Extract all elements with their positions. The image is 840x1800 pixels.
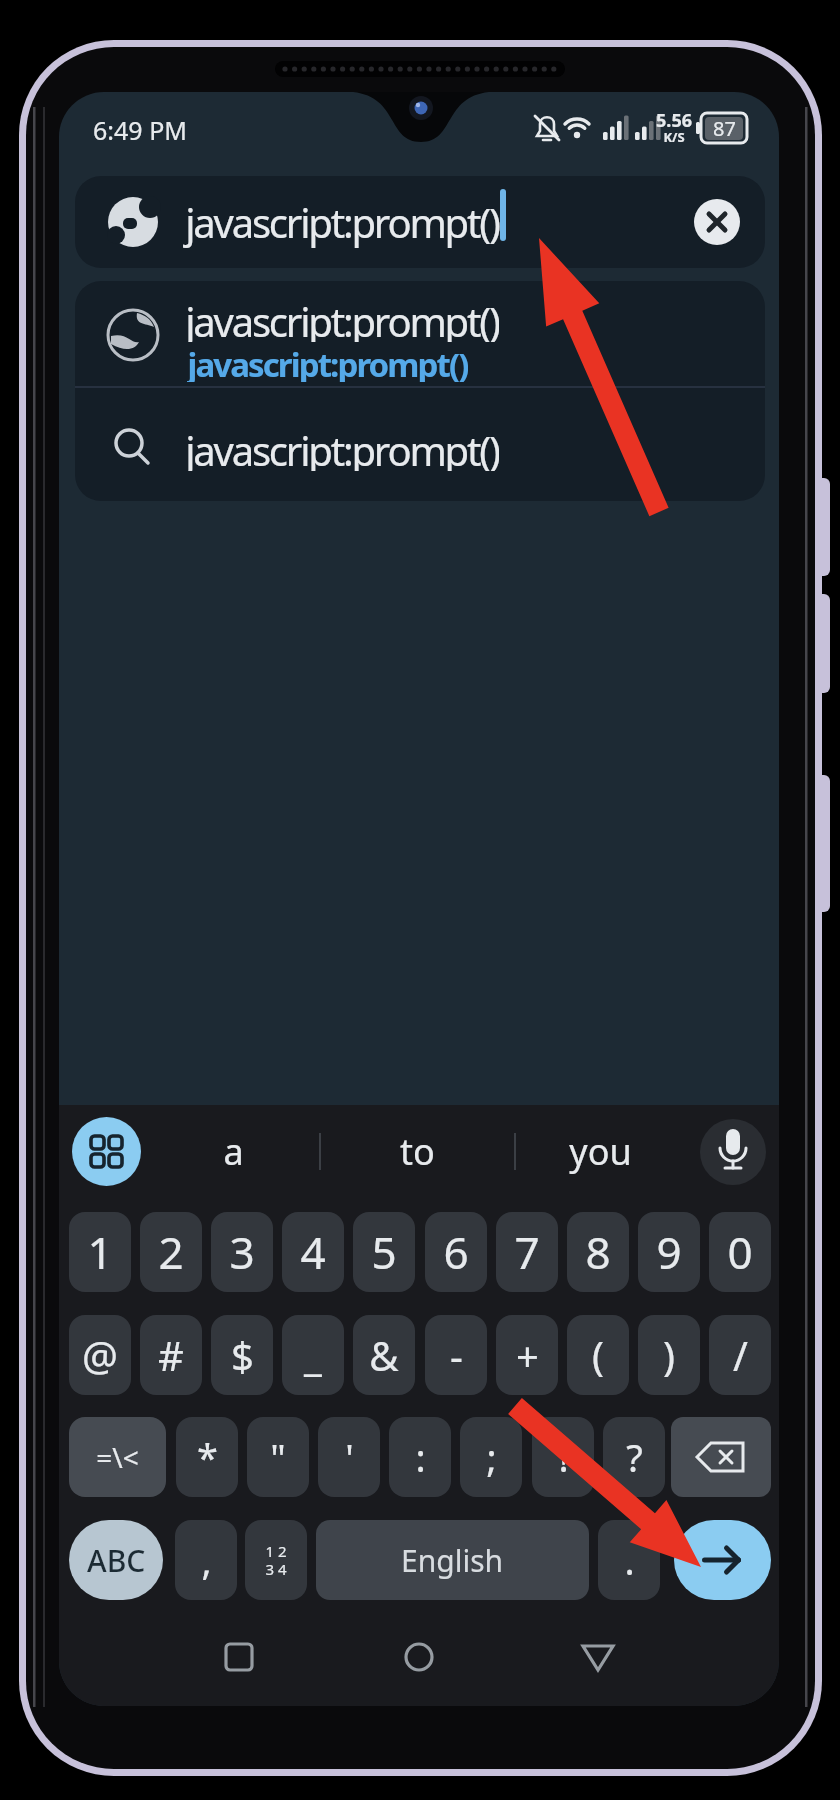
button[interactable]: . <box>598 1520 660 1600</box>
button[interactable]: , <box>175 1520 237 1600</box>
staticText: @ <box>82 1328 118 1382</box>
staticText: 5.56 <box>656 108 692 130</box>
button[interactable]: 7 <box>496 1212 558 1292</box>
button[interactable]: =\< <box>69 1417 166 1497</box>
button[interactable]: + <box>496 1315 558 1395</box>
button[interactable] <box>209 1627 269 1687</box>
button[interactable] <box>75 176 765 268</box>
staticText: K/S <box>663 128 685 144</box>
button[interactable]: 5 <box>353 1212 415 1292</box>
button[interactable]: : <box>389 1417 451 1497</box>
button[interactable]: @ <box>69 1315 131 1395</box>
staticText: , <box>201 1534 212 1586</box>
staticText: 4 <box>300 1222 326 1282</box>
staticText: 9 <box>656 1222 682 1282</box>
button[interactable] <box>671 1417 771 1497</box>
button[interactable]: 1 2 3 4 <box>245 1520 307 1600</box>
staticText: English <box>401 1540 504 1581</box>
staticText: ' <box>345 1431 354 1483</box>
button[interactable]: ? <box>603 1417 665 1497</box>
staticText: 6:49 PM <box>93 113 187 147</box>
staticText: 3 <box>229 1222 255 1282</box>
button[interactable]: 4 <box>282 1212 344 1292</box>
button[interactable]: / <box>709 1315 771 1395</box>
button[interactable]: & <box>353 1315 415 1395</box>
button[interactable]: 6 <box>425 1212 487 1292</box>
staticText: " <box>270 1431 286 1483</box>
staticText: ! <box>558 1431 569 1483</box>
staticText: to <box>400 1127 435 1175</box>
staticText: ) <box>663 1328 675 1382</box>
staticText: 6 <box>443 1222 469 1282</box>
staticText: 2 <box>158 1222 184 1282</box>
staticText: * <box>197 1431 218 1483</box>
button[interactable] <box>75 281 765 387</box>
button[interactable]: # <box>140 1315 202 1395</box>
staticText: 8 <box>585 1222 611 1282</box>
button[interactable]: 0 <box>709 1212 771 1292</box>
staticText: 1 <box>87 1222 113 1282</box>
staticText: _ <box>304 1328 322 1382</box>
button[interactable] <box>694 199 740 245</box>
button[interactable]: ) <box>638 1315 700 1395</box>
staticText: ( <box>592 1328 604 1382</box>
staticText: 1 2 3 4 <box>265 1541 287 1580</box>
staticText: ? <box>626 1431 643 1483</box>
button[interactable]: English <box>316 1520 589 1600</box>
staticText: javascript:prompt() <box>187 342 468 382</box>
button[interactable]: ABC <box>69 1520 163 1600</box>
button[interactable]: ! <box>532 1417 594 1497</box>
button[interactable]: $ <box>211 1315 273 1395</box>
staticText: 7 <box>514 1222 540 1282</box>
button[interactable]: 8 <box>567 1212 629 1292</box>
button[interactable]: * <box>176 1417 238 1497</box>
staticText: 87 <box>713 115 736 142</box>
button[interactable] <box>389 1627 449 1687</box>
staticText: javascript:prompt() <box>185 195 499 249</box>
staticText: =\< <box>96 1438 139 1476</box>
button[interactable]: 9 <box>638 1212 700 1292</box>
staticText: + <box>516 1328 539 1382</box>
staticText: javascript:prompt() <box>185 423 499 471</box>
staticText: - <box>450 1328 463 1382</box>
staticText: 5 <box>371 1222 397 1282</box>
button[interactable]: " <box>247 1417 309 1497</box>
staticText: 0 <box>727 1222 753 1282</box>
button[interactable] <box>75 387 765 501</box>
button[interactable] <box>700 1119 766 1185</box>
staticText: javascript:prompt() <box>185 294 499 342</box>
button[interactable]: _ <box>282 1315 344 1395</box>
button[interactable]: 3 <box>211 1212 273 1292</box>
staticText: # <box>158 1328 184 1382</box>
button[interactable]: 1 <box>69 1212 131 1292</box>
button[interactable]: ; <box>460 1417 522 1497</box>
staticText: / <box>733 1328 748 1382</box>
button[interactable] <box>568 1627 628 1687</box>
staticText: a <box>223 1127 244 1175</box>
staticText: & <box>369 1328 399 1382</box>
staticText: ABC <box>87 1540 146 1581</box>
staticText: . <box>624 1534 635 1586</box>
button[interactable] <box>72 1117 141 1186</box>
button[interactable] <box>674 1520 771 1600</box>
staticText: ; <box>486 1431 497 1483</box>
button[interactable]: - <box>425 1315 487 1395</box>
staticText: : <box>415 1431 426 1483</box>
staticText: you <box>569 1127 632 1175</box>
button[interactable]: 2 <box>140 1212 202 1292</box>
staticText: $ <box>231 1328 254 1382</box>
button[interactable]: ' <box>318 1417 380 1497</box>
button[interactable]: ( <box>567 1315 629 1395</box>
